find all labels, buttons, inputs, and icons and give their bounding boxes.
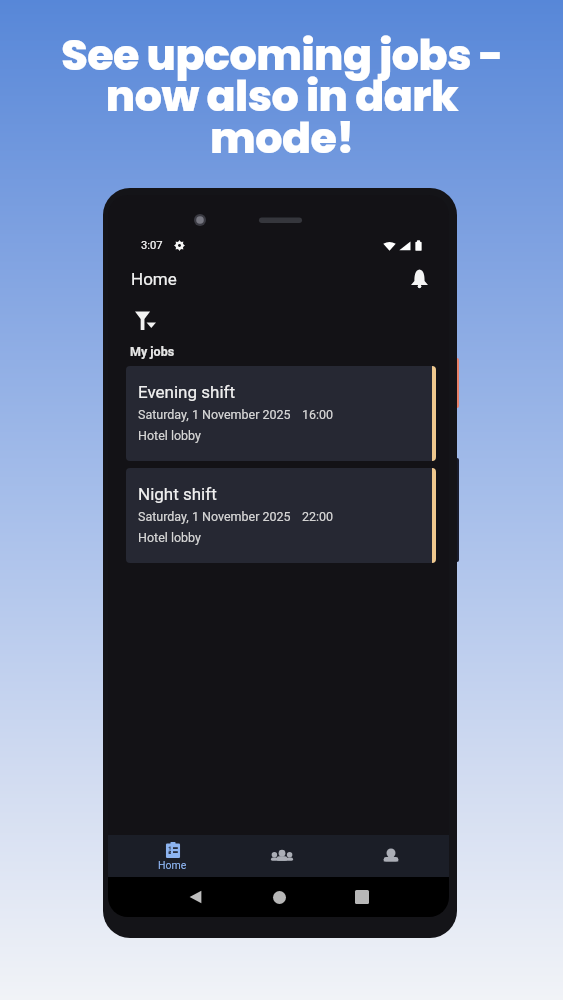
staticText: Home	[158, 859, 187, 871]
staticText: Hotel lobby	[138, 428, 201, 443]
button[interactable]: Home	[118, 835, 227, 877]
staticText: My jobs	[130, 344, 175, 359]
button[interactable]: Profile	[336, 835, 445, 877]
staticText: Hotel lobby	[138, 530, 201, 545]
staticText: 22:00	[302, 509, 334, 524]
staticText: Evening shift	[138, 382, 236, 402]
button[interactable]: Notifications	[402, 262, 436, 296]
staticText: Night shift	[138, 484, 217, 504]
button[interactable]: Recent apps	[344, 879, 380, 915]
staticText: See upcoming jobs - now also in dark mod…	[61, 25, 503, 168]
button[interactable]: Filter	[129, 305, 161, 335]
button[interactable]: Evening shift	[126, 366, 436, 461]
button[interactable]: Team	[227, 835, 336, 877]
staticText: 16:00	[302, 407, 334, 422]
staticText: Saturday, 1 November 2025	[138, 509, 291, 524]
staticText: 3:07	[141, 239, 163, 252]
button[interactable]: Back	[177, 879, 213, 915]
staticText: Home	[131, 269, 177, 289]
staticText: Saturday, 1 November 2025	[138, 407, 291, 422]
button[interactable]: Night shift	[126, 468, 436, 563]
button[interactable]: Home	[261, 879, 297, 915]
